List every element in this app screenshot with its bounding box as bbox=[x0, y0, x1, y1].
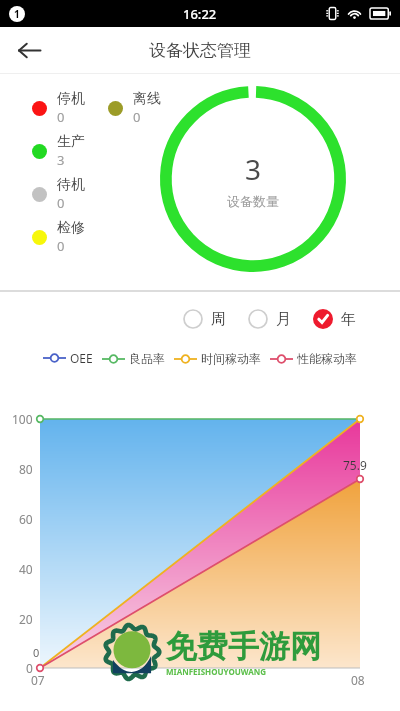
button[interactable]: 良品率 bbox=[102, 351, 165, 366]
button[interactable]: 时间稼动率 bbox=[174, 351, 261, 366]
staticText: 16:22 bbox=[183, 5, 217, 23]
staticText: 60 bbox=[19, 511, 33, 527]
staticText: 年 bbox=[341, 310, 356, 329]
staticText: 待机 bbox=[57, 176, 85, 194]
button[interactable]: 月 bbox=[248, 305, 291, 333]
staticText: 0 bbox=[57, 194, 65, 212]
staticText: 停机 bbox=[57, 90, 85, 108]
button[interactable]: 离线 bbox=[108, 90, 161, 126]
staticText: 检修 bbox=[57, 219, 85, 237]
staticText: 80 bbox=[19, 461, 33, 477]
staticText: 免费手游网 bbox=[166, 627, 321, 666]
button[interactable]: 生产 bbox=[32, 133, 85, 169]
staticText: 0 bbox=[26, 660, 33, 676]
button[interactable]: 性能稼动率 bbox=[270, 351, 357, 366]
staticText: OEE bbox=[70, 350, 93, 366]
staticText: 周 bbox=[211, 310, 226, 329]
button[interactable]: 年 bbox=[313, 305, 356, 333]
staticText: 3 bbox=[245, 150, 262, 188]
staticText: 良品率 bbox=[129, 351, 165, 366]
staticText: 设备状态管理 bbox=[149, 40, 251, 61]
staticText: 3 bbox=[57, 151, 65, 169]
staticText: 0 bbox=[57, 237, 65, 255]
staticText: 0 bbox=[33, 645, 40, 660]
button[interactable]: 停机 bbox=[32, 90, 85, 126]
button[interactable]: 检修 bbox=[32, 219, 85, 255]
staticText: 离线 bbox=[133, 90, 161, 108]
staticText: 40 bbox=[19, 561, 33, 577]
staticText: MIANFEISHOUYOUWANG bbox=[166, 666, 267, 677]
staticText: 20 bbox=[19, 611, 33, 627]
staticText: 100 bbox=[12, 411, 33, 427]
button[interactable]: 待机 bbox=[32, 176, 85, 212]
staticText: 0 bbox=[133, 108, 141, 126]
staticText: 设备数量 bbox=[227, 193, 279, 209]
button[interactable]: OEE bbox=[43, 350, 93, 366]
button[interactable]: 周 bbox=[183, 305, 226, 333]
staticText: 性能稼动率 bbox=[297, 351, 357, 366]
staticText: 08 bbox=[351, 672, 365, 688]
staticText: 1 bbox=[14, 7, 20, 21]
staticText: 0 bbox=[57, 108, 65, 126]
staticText: 07 bbox=[31, 672, 45, 688]
staticText: 时间稼动率 bbox=[201, 351, 261, 366]
button[interactable]: Back bbox=[7, 28, 51, 72]
staticText: 月 bbox=[276, 310, 291, 329]
staticText: 生产 bbox=[57, 133, 85, 151]
staticText: 75.9 bbox=[343, 457, 367, 473]
